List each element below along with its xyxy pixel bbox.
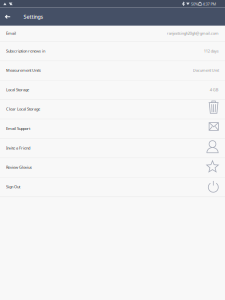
button[interactable]: Sign Out xyxy=(0,178,225,197)
button[interactable]: Invite a Friend xyxy=(0,139,225,158)
staticText: Review Glovius xyxy=(6,165,32,170)
staticText: Clear Local Storage xyxy=(6,106,40,112)
staticText: Local Storage xyxy=(6,87,29,92)
button[interactable]: Local Storage xyxy=(0,81,225,100)
button[interactable]: Subscription renews in xyxy=(0,42,225,61)
staticText: Document Unit xyxy=(193,68,219,73)
staticText: Invite a Friend xyxy=(6,145,30,150)
button[interactable]: Email xyxy=(0,26,225,42)
staticText: Sign Out xyxy=(6,184,20,189)
staticText: Settings xyxy=(23,13,43,20)
button[interactable]: Clear Local Storage xyxy=(0,100,225,119)
staticText: Email Support xyxy=(6,126,30,131)
button[interactable]: Back xyxy=(0,8,16,26)
staticText: 4 GB xyxy=(210,87,219,92)
staticText: ranjeetsingh20gh@gmail.com xyxy=(167,30,219,36)
staticText: 4:37 PM xyxy=(203,1,217,6)
staticText: Email xyxy=(6,30,16,36)
button[interactable]: Email Support xyxy=(0,119,225,139)
button[interactable]: Review Glovius xyxy=(0,158,225,178)
staticText: 50% xyxy=(191,1,198,6)
staticText: 112 days xyxy=(204,48,219,53)
staticText: Subscription renews in xyxy=(6,48,45,53)
staticText: Measurement Units xyxy=(6,68,41,73)
button[interactable]: Measurement Units xyxy=(0,61,225,81)
